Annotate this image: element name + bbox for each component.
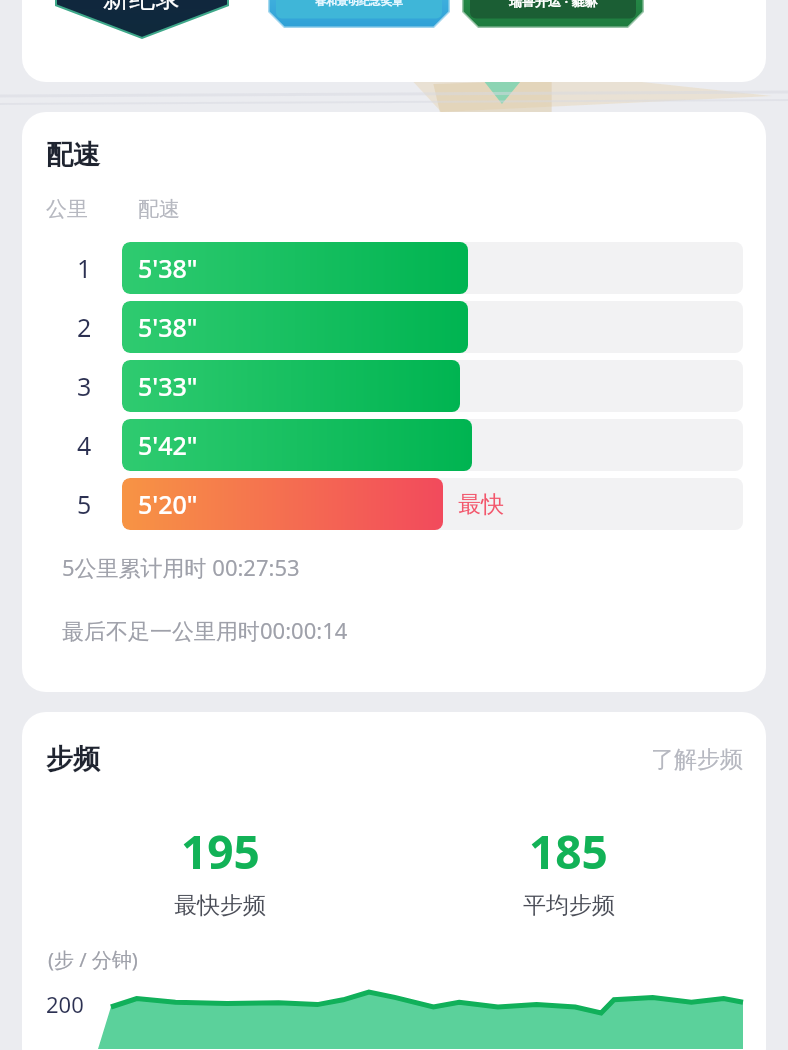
staticText: 配速	[138, 196, 180, 222]
staticText: 5公里累计用时 00:27:53	[62, 552, 300, 582]
staticText: 4	[77, 428, 92, 462]
staticText: 5'38"	[138, 251, 198, 285]
staticText: 2	[77, 310, 92, 344]
staticText: 200	[46, 989, 84, 1019]
staticText: 平均步频	[523, 891, 615, 920]
staticText: 1	[77, 251, 92, 285]
staticText: 配速	[46, 138, 100, 172]
staticText: 瑞兽开运 · 貔貅	[509, 0, 598, 10]
staticText: 5'33"	[138, 369, 198, 403]
staticText: 新纪录	[103, 0, 181, 15]
staticText: 春和景明纪念奖章	[315, 0, 403, 8]
staticText: 最后不足一公里用时00:00:14	[62, 615, 348, 645]
staticText: 5	[77, 487, 92, 521]
staticText: 195	[181, 820, 260, 883]
staticText: 了解步频	[651, 745, 743, 774]
staticText: 5'38"	[138, 310, 198, 344]
staticText: 最快	[458, 490, 504, 519]
staticText: 公里	[46, 196, 138, 222]
staticText: 步频	[46, 742, 100, 776]
button[interactable]: 了解步频	[651, 745, 743, 774]
staticText: 最快步频	[174, 891, 266, 920]
staticText: (步 / 分钟)	[48, 946, 138, 973]
staticText: 185	[529, 820, 608, 883]
staticText: 3	[77, 369, 92, 403]
staticText: 5'20"	[138, 487, 198, 521]
staticText: 5'42"	[138, 428, 198, 462]
